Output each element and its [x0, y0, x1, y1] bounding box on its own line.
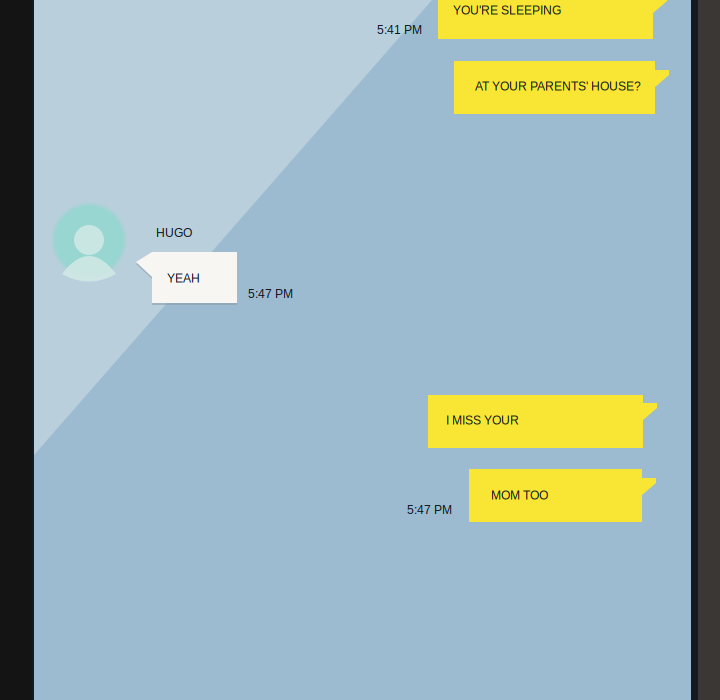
- staticText: 5:47 PM: [407, 503, 452, 517]
- button[interactable]: YOU'RE SLEEPING: [438, 0, 667, 39]
- button[interactable]: AT YOUR PARENTS' HOUSE?: [454, 61, 669, 114]
- staticText: I MISS YOUR: [446, 413, 519, 427]
- staticText: YOU'RE SLEEPING: [453, 3, 561, 17]
- button[interactable]: YEAH: [136, 252, 237, 305]
- button[interactable]: MOM TOO: [469, 469, 656, 522]
- button[interactable]: I MISS YOUR: [428, 395, 657, 448]
- staticText: AT YOUR PARENTS' HOUSE?: [475, 79, 641, 93]
- staticText: 5:41 PM: [377, 23, 422, 37]
- staticText: YEAH: [167, 271, 200, 285]
- staticText: MOM TOO: [491, 488, 548, 502]
- staticText: 5:47 PM: [248, 287, 293, 301]
- staticText: HUGO: [156, 226, 192, 240]
